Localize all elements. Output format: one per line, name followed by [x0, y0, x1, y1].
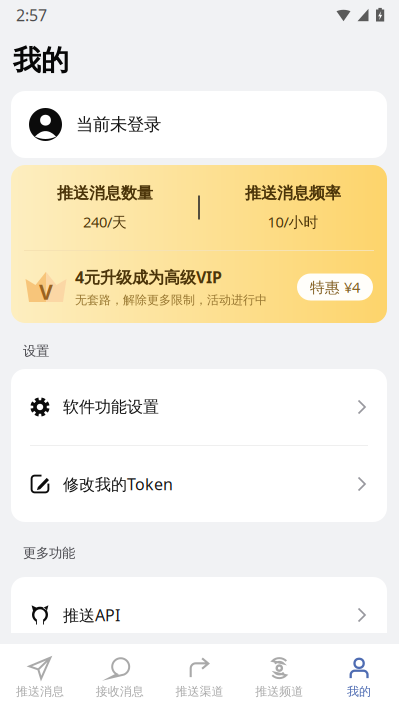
button[interactable]: 推送渠道	[160, 656, 239, 699]
button[interactable]: 推送API	[11, 577, 387, 653]
staticText: 推送消息频率	[245, 183, 341, 203]
staticText: 修改我的Token	[63, 473, 173, 495]
staticText: 无套路，解除更多限制，活动进行中	[75, 293, 267, 307]
staticText: 推送消息	[16, 684, 64, 699]
staticText: 特惠 ¥4	[310, 277, 360, 297]
button[interactable]: 当前未登录	[11, 91, 387, 158]
staticText: 设置	[23, 343, 49, 359]
button[interactable]: 推送消息	[0, 656, 80, 699]
staticText: 我的	[347, 684, 371, 699]
button[interactable]: 我的	[319, 656, 399, 699]
staticText: 推送频道	[255, 684, 303, 699]
staticText: 240/天	[83, 212, 127, 232]
staticText: 推送API	[63, 604, 120, 626]
button[interactable]: 接收消息	[80, 656, 160, 699]
staticText: 软件功能设置	[63, 397, 159, 417]
staticText: 10/小时	[267, 212, 318, 232]
staticText: 更多功能	[23, 545, 75, 561]
staticText: 4元升级成为高级VIP	[75, 266, 222, 288]
button[interactable]: 推送频道	[239, 656, 319, 699]
button[interactable]: 软件功能设置	[11, 369, 387, 445]
staticText: 当前未登录	[76, 114, 161, 135]
button[interactable]: V	[11, 251, 387, 323]
staticText: 2:57	[16, 4, 47, 26]
staticText: 推送消息数量	[57, 183, 153, 203]
staticText: 推送渠道	[175, 684, 223, 699]
button[interactable]: 修改我的Token	[11, 446, 387, 522]
staticText: V	[39, 277, 53, 306]
staticText: 接收消息	[96, 684, 144, 699]
staticText: 我的	[13, 43, 69, 78]
